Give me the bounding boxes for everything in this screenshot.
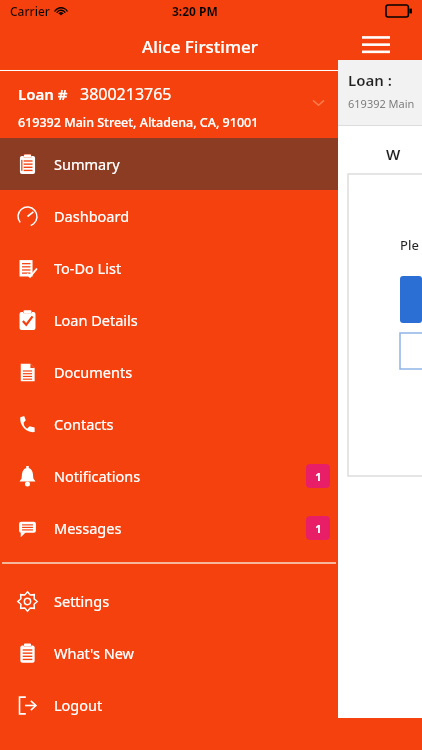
staticText: Documents (54, 362, 133, 382)
staticText: Logout (54, 695, 103, 715)
staticText: Messages (54, 518, 122, 538)
button[interactable]: Dashboard (0, 190, 338, 242)
button[interactable]: Secondary action (400, 333, 422, 369)
button[interactable]: What's New (0, 627, 338, 679)
button[interactable]: Loan Details (0, 294, 338, 346)
button[interactable]: Settings (0, 575, 338, 627)
button[interactable]: Logout (0, 679, 338, 731)
staticText: Settings (54, 591, 110, 611)
staticText: Alice Firstimer (142, 35, 259, 58)
staticText: 619392 Main S (348, 96, 422, 111)
staticText: 1 (315, 469, 322, 484)
staticText: Contacts (54, 414, 114, 434)
button[interactable]: Open navigation menu (355, 24, 397, 66)
staticText: Loan : 3800 (348, 70, 422, 90)
staticText: Notifications (54, 466, 141, 486)
button[interactable]: Notifications (0, 450, 338, 502)
staticText: 619392 Main Street, Altadena, CA, 91001 (18, 114, 259, 131)
staticText: 3800213765 (80, 83, 172, 105)
button[interactable]: Primary action (400, 276, 422, 323)
staticText: Carrier (10, 3, 50, 19)
button[interactable]: To-Do List (0, 242, 338, 294)
staticText: W (386, 144, 401, 164)
button[interactable]: Messages (0, 502, 338, 554)
staticText: Summary (54, 154, 120, 174)
staticText: Loan # (18, 84, 68, 104)
staticText: What's New (54, 643, 134, 663)
staticText: Ple (400, 236, 419, 254)
button[interactable]: Contacts (0, 398, 338, 450)
staticText: 1 (315, 521, 322, 536)
staticText: 3:20 PM (172, 3, 218, 19)
button[interactable]: Documents (0, 346, 338, 398)
button[interactable]: Summary (0, 138, 338, 190)
staticText: To-Do List (54, 258, 122, 278)
button[interactable]: Loan # (0, 71, 338, 138)
staticText: Loan Details (54, 310, 138, 330)
staticText: Dashboard (54, 206, 130, 226)
